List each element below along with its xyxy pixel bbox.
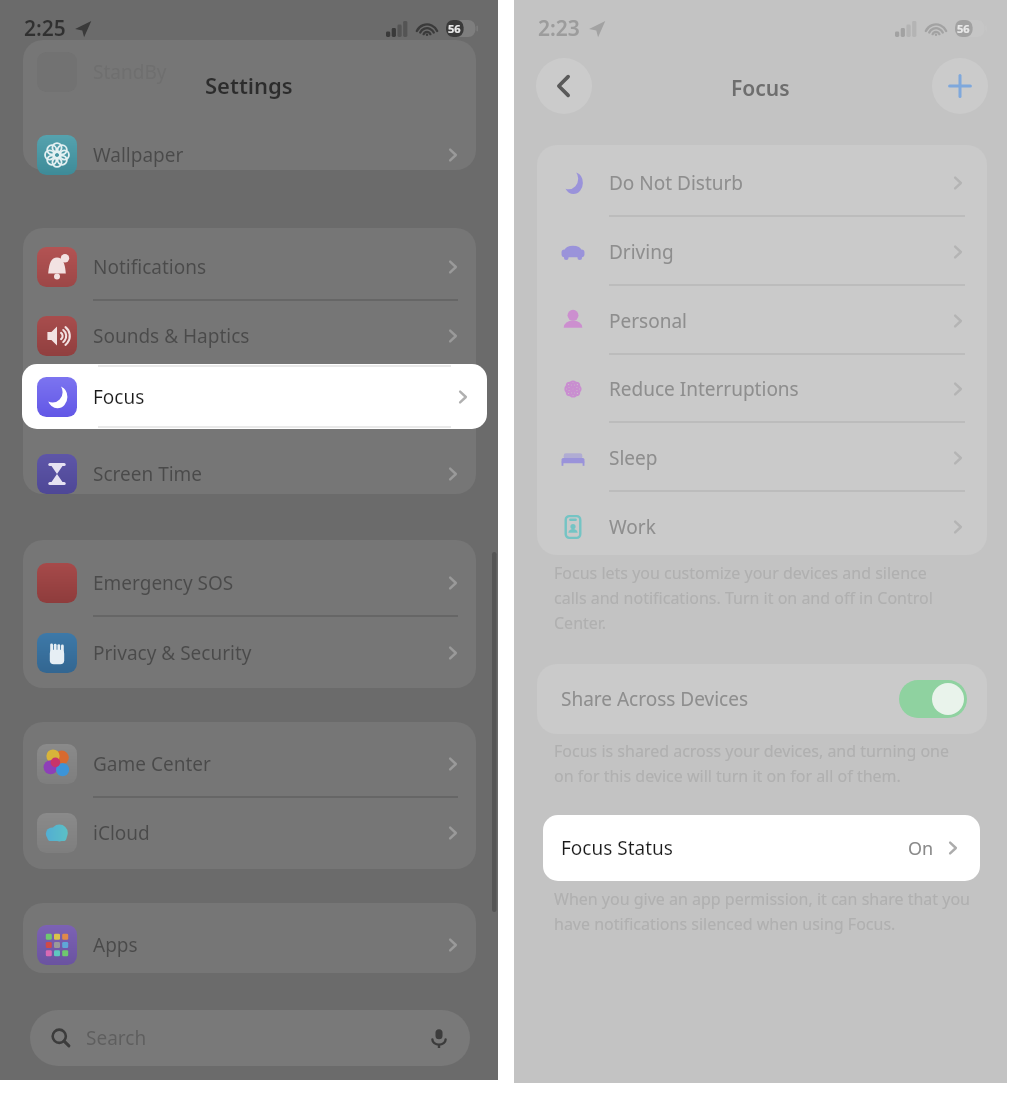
staticText: Work <box>609 514 656 540</box>
staticText: 56 <box>448 21 461 36</box>
button[interactable]: Focus <box>22 364 487 429</box>
staticText: Share Across Devices <box>561 686 749 712</box>
button[interactable]: Back <box>536 58 592 114</box>
staticText: Sleep <box>609 445 658 471</box>
staticText: Emergency SOS <box>93 570 234 596</box>
staticText: When you give an app permission, it can … <box>554 888 994 934</box>
button[interactable]: Sounds & Haptics <box>23 301 476 370</box>
button[interactable]: Emergency SOS <box>23 548 476 617</box>
button[interactable]: Notifications <box>23 232 476 301</box>
staticText: 2:25 <box>24 14 66 43</box>
button[interactable]: Privacy & Security <box>23 618 476 687</box>
button[interactable]: Personal <box>537 286 987 355</box>
staticText: Privacy & Security <box>93 640 252 666</box>
staticText: On <box>908 836 934 861</box>
button[interactable]: Sleep <box>537 423 987 492</box>
button[interactable]: iCloud <box>23 798 476 867</box>
button[interactable]: Screen Time <box>23 439 476 508</box>
staticText: Apps <box>93 932 138 958</box>
staticText: Focus <box>731 74 790 103</box>
staticText: Settings <box>205 70 293 100</box>
button[interactable]: Driving <box>537 217 987 286</box>
staticText: Focus is shared across your devices, and… <box>554 740 994 786</box>
button[interactable]: Reduce Interruptions <box>537 354 987 423</box>
staticText: Do Not Disturb <box>609 170 744 196</box>
button[interactable]: Share Across Devices <box>537 664 987 734</box>
staticText: Notifications <box>93 254 207 280</box>
button[interactable]: Do Not Disturb <box>537 148 987 217</box>
button[interactable]: Focus Status <box>543 815 980 881</box>
staticText: Focus lets you customize your devices an… <box>554 562 994 633</box>
staticText: Search <box>86 1025 147 1051</box>
staticText: Screen Time <box>93 461 203 487</box>
button[interactable]: Add Focus <box>932 58 988 114</box>
button[interactable]: Wallpaper <box>23 120 476 189</box>
button[interactable]: Search <box>30 1010 470 1066</box>
staticText: Focus Status <box>561 835 673 861</box>
staticText: Sounds & Haptics <box>93 323 250 349</box>
staticText: Driving <box>609 239 674 265</box>
staticText: Game Center <box>93 751 211 777</box>
staticText: Wallpaper <box>93 142 184 168</box>
staticText: 2:23 <box>538 14 580 43</box>
button[interactable]: Apps <box>23 910 476 979</box>
staticText: iCloud <box>93 820 150 846</box>
staticText: Personal <box>609 308 687 334</box>
button[interactable]: Game Center <box>23 729 476 798</box>
staticText: Reduce Interruptions <box>609 376 799 402</box>
button[interactable]: Share Across Devices toggle on <box>899 680 967 718</box>
staticText: Focus <box>93 384 145 410</box>
staticText: 56 <box>957 21 970 36</box>
button[interactable]: Work <box>537 492 987 561</box>
